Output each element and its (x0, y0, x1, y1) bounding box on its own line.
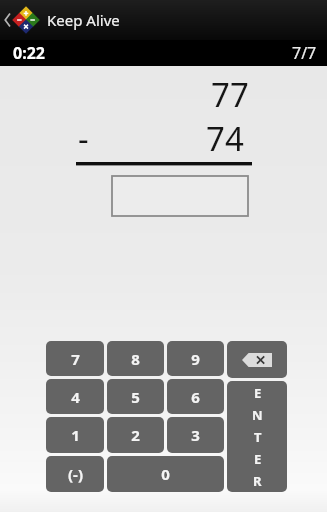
staticText: 8 (131, 349, 140, 369)
staticText: E (254, 384, 262, 402)
staticText: (-) (68, 464, 83, 484)
button[interactable]: 0 (107, 456, 224, 492)
button[interactable]: 3 (167, 417, 224, 453)
staticText: 3 (191, 425, 200, 445)
staticText: Keep Alive (47, 10, 120, 30)
staticText: - (78, 116, 89, 161)
staticText: R (253, 472, 262, 490)
button[interactable]: 4 (46, 379, 104, 414)
staticText: 7 (71, 349, 80, 369)
staticText: 77 (211, 72, 249, 117)
staticText: 5 (131, 387, 140, 407)
staticText: N (252, 406, 263, 424)
button[interactable]: 1 (46, 417, 104, 453)
button[interactable]: 6 (167, 379, 224, 414)
button[interactable]: 2 (107, 417, 164, 453)
button[interactable]: 7 (46, 341, 104, 376)
button[interactable]: Navigate up (0, 0, 40, 40)
button[interactable]: (-) (46, 456, 104, 492)
button[interactable]: Backspace (227, 341, 287, 378)
button[interactable]: 9 (167, 341, 224, 376)
button[interactable]: 8 (107, 341, 164, 376)
staticText: 0 (161, 464, 170, 484)
staticText: 7/7 (292, 42, 317, 64)
staticText: 74 (206, 116, 244, 161)
staticText: 9 (191, 349, 200, 369)
button[interactable]: Enter (227, 381, 287, 492)
staticText: T (254, 428, 262, 446)
staticText: 2 (131, 425, 140, 445)
staticText: E (254, 450, 262, 468)
staticText: 0:22 (13, 42, 45, 64)
staticText: 1 (71, 425, 80, 445)
staticText: 4 (71, 387, 80, 407)
button[interactable]: 5 (107, 379, 164, 414)
staticText: 6 (191, 387, 200, 407)
